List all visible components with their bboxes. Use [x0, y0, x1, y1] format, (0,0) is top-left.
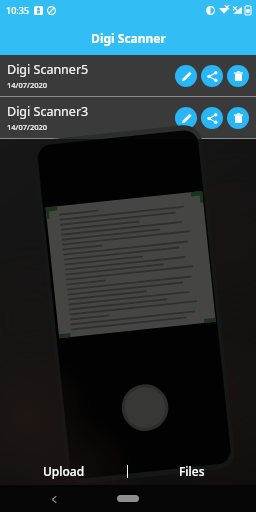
staticText: Digi Scanner: [91, 30, 166, 46]
staticText: Digi Scanner3: [7, 103, 89, 120]
staticText: 10:35: [6, 4, 30, 16]
button[interactable]: Home: [117, 495, 139, 502]
button[interactable]: Share: [201, 65, 223, 87]
staticText: 14/07/2020: [7, 122, 48, 132]
button[interactable]: Upload: [0, 457, 127, 485]
button[interactable]: Edit: [175, 65, 197, 87]
staticText: Upload: [43, 463, 85, 479]
button[interactable]: Back: [46, 491, 62, 507]
staticText: Digi Scanner5: [7, 61, 89, 78]
button[interactable]: Digi Scanner5: [0, 55, 256, 96]
button[interactable]: Delete: [227, 65, 249, 87]
button[interactable]: Share: [201, 107, 223, 129]
button[interactable]: Delete: [227, 107, 249, 129]
button[interactable]: Files: [128, 457, 256, 485]
staticText: 14/07/2020: [7, 80, 48, 90]
staticText: Files: [179, 463, 205, 479]
button[interactable]: Edit: [175, 107, 197, 129]
button[interactable]: Digi Scanner3: [0, 97, 256, 138]
